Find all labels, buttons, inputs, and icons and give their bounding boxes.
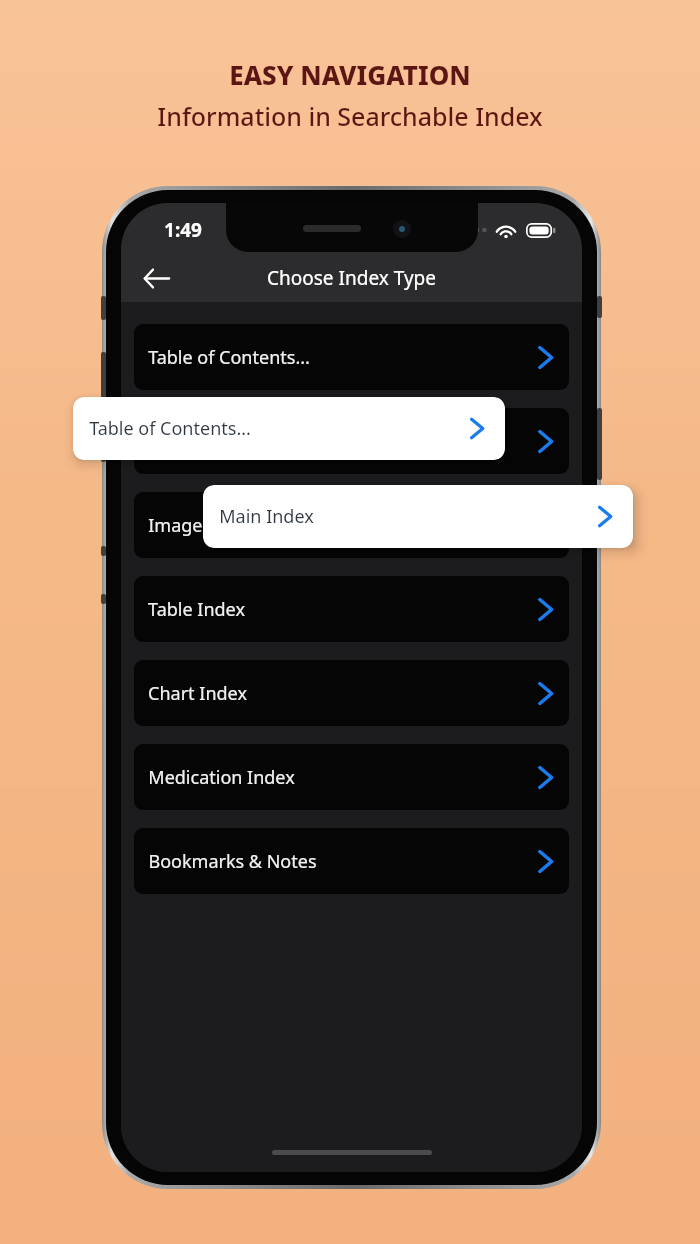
button[interactable]: Table of Contents... [73, 397, 505, 460]
staticText: Information in Searchable Index [157, 99, 543, 133]
staticText: Chart Index [148, 681, 247, 706]
staticText: Main Index [219, 504, 314, 529]
staticText: Choose Index Type [267, 265, 436, 291]
staticText: Medication Index [148, 765, 295, 790]
button[interactable]: Bookmarks & Notes [134, 828, 569, 894]
staticText: EASY NAVIGATION [229, 57, 471, 92]
staticText: Table of Contents... [148, 345, 310, 370]
staticText: Bookmarks & Notes [148, 849, 317, 874]
button[interactable]: Main Index [203, 485, 633, 548]
button[interactable]: Medication Index [134, 744, 569, 810]
staticText: 1:49 [164, 217, 202, 243]
staticText: Image Index [148, 513, 255, 538]
button[interactable]: Table of Contents... [134, 324, 569, 390]
button[interactable]: Image Index [134, 492, 569, 558]
button[interactable] [134, 408, 569, 474]
button[interactable]: Back [132, 254, 180, 302]
staticText: Table of Contents... [89, 416, 251, 441]
button[interactable]: Chart Index [134, 660, 569, 726]
button[interactable]: Table Index [134, 576, 569, 642]
staticText: Table Index [148, 597, 245, 622]
